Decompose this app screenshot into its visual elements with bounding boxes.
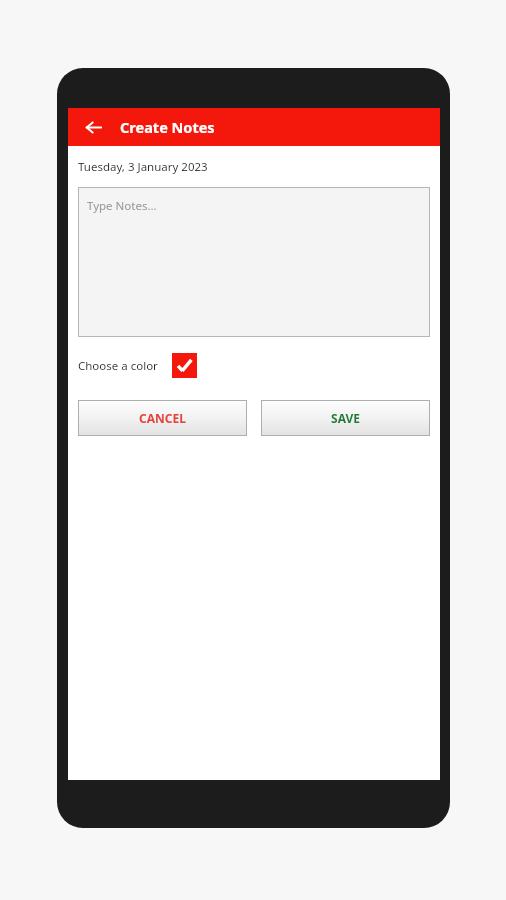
- staticText: SAVE: [331, 410, 360, 426]
- button[interactable]: CANCEL: [78, 400, 247, 436]
- button[interactable]: Type Notes...: [78, 187, 430, 337]
- staticText: Create Notes: [120, 117, 215, 137]
- staticText: Choose a color: [78, 358, 158, 374]
- button[interactable]: Choose a color: [172, 353, 197, 378]
- button[interactable]: SAVE: [261, 400, 430, 436]
- button[interactable]: Back: [78, 112, 108, 142]
- staticText: CANCEL: [139, 410, 186, 426]
- staticText: Tuesday, 3 January 2023: [78, 159, 208, 175]
- staticText: Type Notes...: [87, 198, 157, 214]
